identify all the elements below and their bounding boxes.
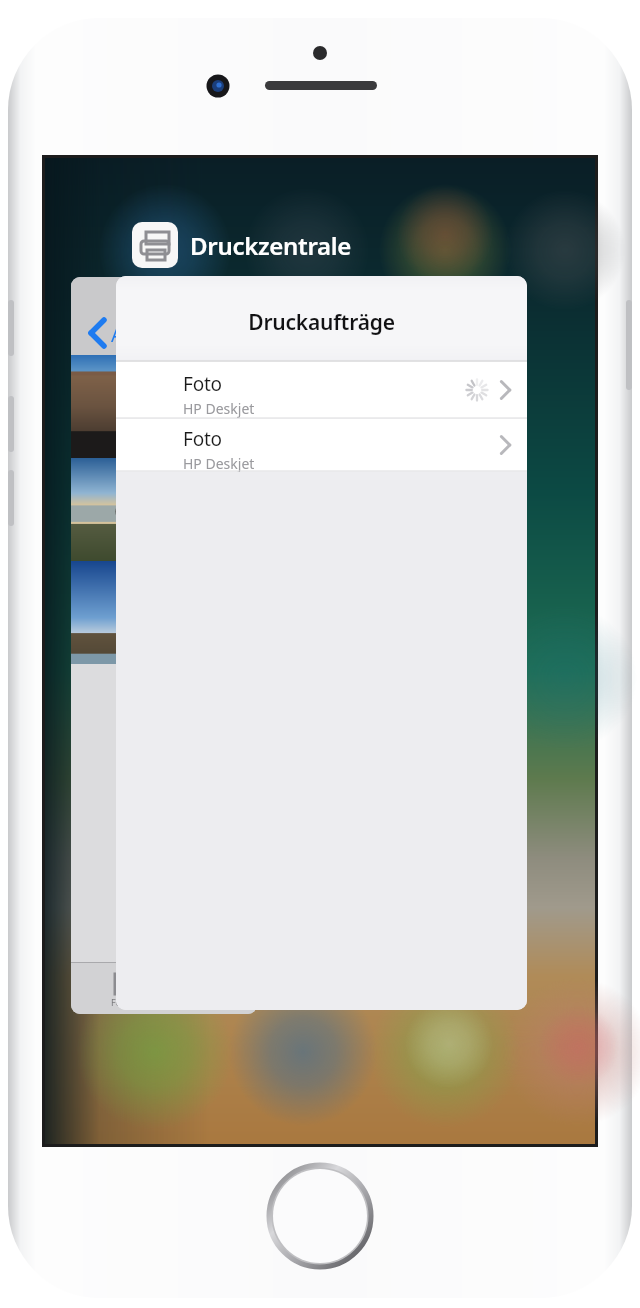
staticText: HP Deskjet <box>183 399 255 418</box>
staticText: Fo <box>111 996 122 1008</box>
staticText: Foto <box>183 426 222 452</box>
button[interactable]: Foto <box>116 419 527 471</box>
staticText: Druckzentrale <box>190 229 352 262</box>
button[interactable]: Foto <box>116 362 527 418</box>
staticText: HP Deskjet <box>183 454 255 473</box>
staticText: Foto <box>183 371 222 397</box>
staticText: Al <box>111 322 129 348</box>
button[interactable]: Print Center app <box>132 222 178 268</box>
staticText: Druckaufträge <box>116 308 527 337</box>
button[interactable]: Back <box>71 277 257 355</box>
